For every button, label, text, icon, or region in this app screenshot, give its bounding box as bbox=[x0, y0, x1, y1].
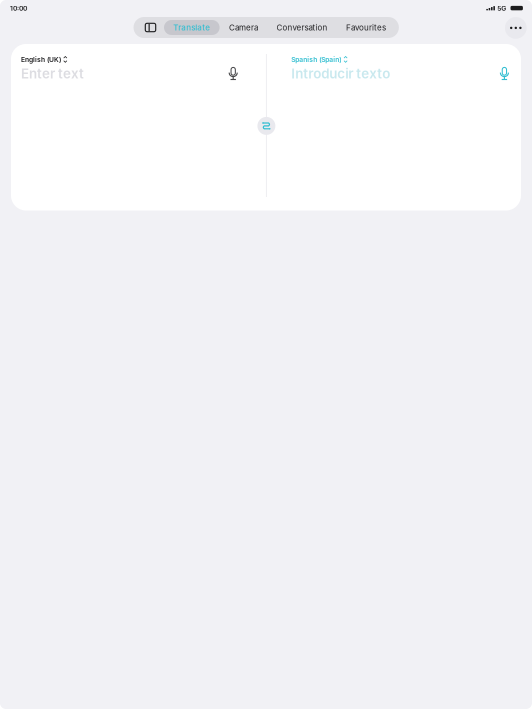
staticText: 5G bbox=[497, 4, 506, 12]
button[interactable]: More bbox=[505, 17, 527, 39]
button[interactable]: Spanish (Spain) bbox=[291, 54, 348, 64]
staticText: Spanish (Spain) bbox=[291, 56, 341, 63]
staticText: Camera bbox=[229, 23, 258, 32]
button[interactable]: Dictate bbox=[223, 62, 244, 85]
button[interactable]: Show Sidebar bbox=[137, 17, 164, 38]
staticText: Enter text bbox=[21, 66, 84, 81]
button[interactable]: Favourites bbox=[337, 20, 395, 35]
staticText: Introducir texto bbox=[291, 66, 390, 81]
button[interactable]: English (UK) bbox=[21, 54, 67, 64]
button[interactable]: Swap languages bbox=[257, 117, 275, 135]
staticText: Favourites bbox=[346, 23, 386, 32]
button[interactable]: Conversation bbox=[267, 20, 337, 35]
button[interactable]: Dictate bbox=[494, 62, 515, 85]
staticText: English (UK) bbox=[21, 56, 61, 63]
button[interactable]: Translate bbox=[164, 20, 220, 35]
staticText: Translate bbox=[173, 23, 210, 32]
button[interactable]: Camera bbox=[220, 20, 267, 35]
staticText: 10:00 bbox=[10, 4, 27, 12]
staticText: Conversation bbox=[276, 23, 327, 32]
